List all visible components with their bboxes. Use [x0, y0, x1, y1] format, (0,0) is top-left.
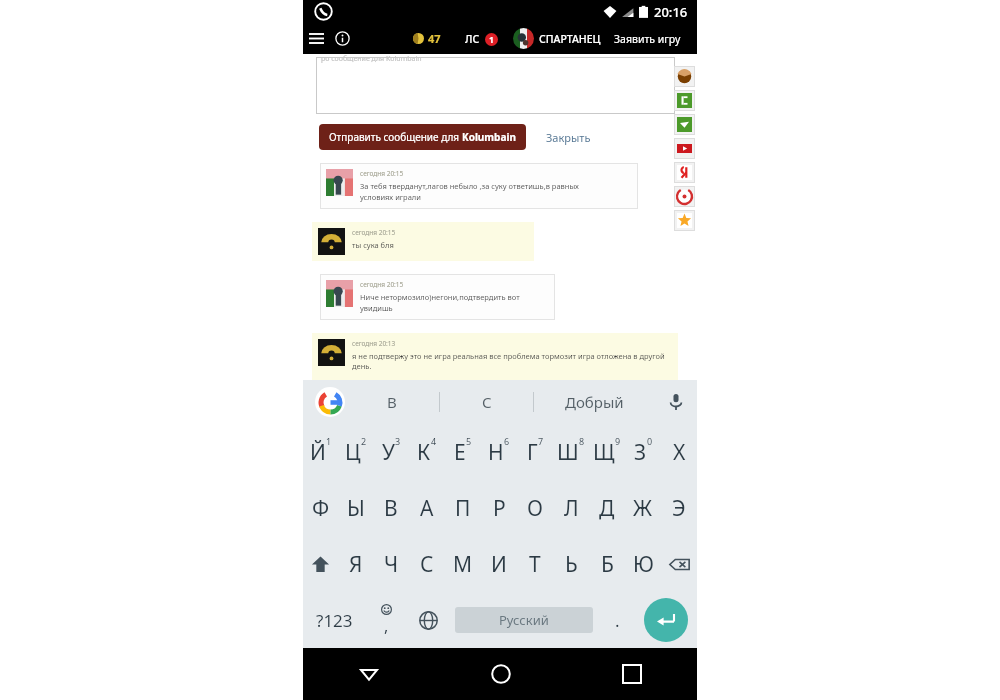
button[interactable]: СПАРТАНЕЦ [513, 25, 601, 52]
staticText: М [453, 550, 473, 579]
button[interactable]: А [409, 480, 445, 536]
staticText: ты сука бля [352, 240, 394, 250]
staticText: 3 [395, 435, 401, 447]
staticText: условиях играли [360, 192, 421, 202]
staticText: Заявить игру [614, 32, 681, 46]
button[interactable]: Л [553, 480, 589, 536]
staticText: сегодня 20:13 [352, 339, 396, 348]
button[interactable]: Recent apps [566, 648, 697, 700]
button[interactable]: Change language [407, 592, 449, 648]
button[interactable]: Home [435, 648, 566, 700]
button[interactable]: Й [303, 424, 338, 480]
button[interactable]: Х [661, 424, 697, 480]
staticText: С [420, 550, 434, 579]
button[interactable]: Ц [338, 424, 373, 480]
staticText: 47 [428, 31, 441, 46]
button[interactable]: ЛС [465, 28, 498, 50]
button[interactable]: OK [674, 66, 695, 87]
button[interactable]: Share [674, 186, 695, 207]
button[interactable]: Back [303, 648, 435, 700]
button[interactable]: Ж [625, 480, 661, 536]
button[interactable]: Shift [303, 536, 338, 592]
button[interactable]: . [599, 592, 635, 648]
staticText: сегодня 20:15 [360, 169, 404, 178]
button[interactable]: Ю [625, 536, 661, 592]
button[interactable]: YouTube [674, 138, 695, 159]
button[interactable]: Ч [373, 536, 409, 592]
staticText: 7 [538, 435, 544, 447]
staticText: 1 [489, 34, 494, 46]
button[interactable]: В [373, 480, 409, 536]
button[interactable]: Н [481, 424, 517, 480]
button[interactable]: У [373, 424, 409, 480]
button[interactable]: Ы [338, 480, 373, 536]
button[interactable]: Favorite [674, 210, 695, 231]
button[interactable]: VK [674, 90, 695, 111]
button[interactable]: О [517, 480, 553, 536]
button[interactable]: Voice input [655, 380, 697, 424]
staticText: П [455, 494, 471, 523]
staticText: Ч [384, 550, 399, 579]
button[interactable]: Р [481, 480, 517, 536]
staticText: Ы [347, 494, 365, 523]
button[interactable]: Я [338, 536, 373, 592]
button[interactable]: сегодня 20:15 [312, 222, 534, 261]
staticText: Ь [565, 550, 578, 579]
button[interactable]: Заявить игру [614, 26, 681, 52]
button[interactable]: В [345, 380, 439, 424]
button[interactable]: сегодня 20:15 [320, 163, 638, 209]
button[interactable]: З [625, 424, 661, 480]
staticText: . [615, 609, 620, 632]
button[interactable]: сегодня 20:13 [312, 333, 678, 380]
button[interactable]: Д [589, 480, 625, 536]
button[interactable]: Yandex [674, 162, 695, 183]
button[interactable]: Emoji and comma [365, 592, 407, 648]
button[interactable]: Русский [455, 607, 593, 633]
staticText: 4 [431, 435, 437, 447]
staticText: СПАРТАНЕЦ [539, 32, 601, 46]
button[interactable]: Information [330, 26, 355, 51]
staticText: Н [488, 438, 504, 467]
staticText: Я [349, 550, 363, 579]
button[interactable]: Г [517, 424, 553, 480]
staticText: Kolumbain [462, 130, 516, 144]
button[interactable]: Backspace [661, 536, 697, 592]
button[interactable]: И [481, 536, 517, 592]
staticText: 1 [326, 435, 332, 447]
staticText: У [382, 438, 395, 467]
staticText: Отправить сообщение для [329, 130, 462, 144]
button[interactable]: Enter [635, 592, 697, 648]
button[interactable]: С [440, 380, 533, 424]
staticText: Л [564, 494, 579, 523]
button[interactable]: Menu [303, 25, 330, 52]
button[interactable]: Google [315, 387, 345, 417]
staticText: Б [601, 550, 614, 579]
staticText: Щ [593, 438, 615, 467]
staticText: Э [672, 494, 686, 523]
staticText: 0 [647, 435, 653, 447]
staticText: Ф [312, 494, 330, 523]
button[interactable]: Ь [553, 536, 589, 592]
button[interactable]: Ф [303, 480, 338, 536]
button[interactable]: Добрый [534, 380, 655, 424]
button[interactable]: ?123 [303, 592, 365, 648]
button[interactable]: сегодня 20:15 [320, 274, 555, 320]
button[interactable]: Б [589, 536, 625, 592]
staticText: 8 [579, 435, 585, 447]
button[interactable]: Т [517, 536, 553, 592]
button[interactable]: С [409, 536, 445, 592]
button[interactable]: П [445, 480, 481, 536]
button[interactable]: К [409, 424, 445, 480]
button[interactable]: Щ [589, 424, 625, 480]
button[interactable]: Ш [553, 424, 589, 480]
button[interactable]: Е [445, 424, 481, 480]
staticText: 9 [615, 435, 621, 447]
staticText: Ш [557, 438, 579, 467]
button[interactable]: Отправить сообщение для [319, 124, 526, 150]
staticText: Г [527, 438, 538, 467]
button[interactable]: М [445, 536, 481, 592]
button[interactable]: Twitter [674, 114, 695, 135]
button[interactable]: Э [661, 480, 697, 536]
button[interactable]: Закрыть [542, 126, 595, 149]
button[interactable]: 47 [411, 27, 443, 50]
